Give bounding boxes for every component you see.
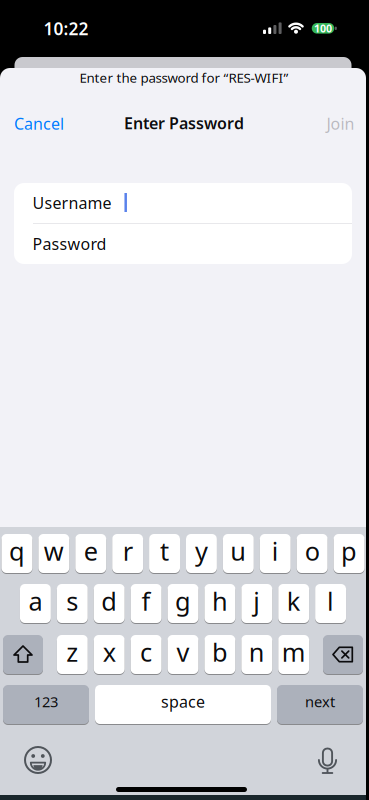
button[interactable]: u bbox=[223, 533, 254, 573]
staticText: c bbox=[140, 635, 152, 669]
staticText: Username bbox=[32, 192, 111, 213]
button[interactable]: q bbox=[1, 533, 32, 573]
button[interactable]: x bbox=[94, 634, 125, 674]
staticText: t bbox=[160, 534, 169, 568]
staticText: g bbox=[175, 584, 191, 618]
staticText: next bbox=[305, 692, 335, 711]
staticText: 10:22 bbox=[43, 17, 88, 40]
staticText: n bbox=[249, 635, 265, 669]
staticText: x bbox=[103, 635, 116, 669]
button[interactable]: Emoji bbox=[22, 744, 53, 775]
button[interactable]: g bbox=[167, 583, 198, 623]
button[interactable]: space bbox=[95, 684, 271, 724]
button[interactable]: m bbox=[278, 634, 309, 674]
button[interactable]: Username bbox=[14, 183, 352, 223]
button[interactable]: l bbox=[315, 583, 346, 623]
staticText: o bbox=[305, 534, 320, 568]
staticText: y bbox=[195, 534, 208, 568]
staticText: z bbox=[66, 635, 78, 669]
staticText: s bbox=[66, 584, 78, 618]
button[interactable]: Shift bbox=[3, 634, 43, 674]
staticText: v bbox=[176, 635, 189, 669]
staticText: Join bbox=[326, 113, 354, 134]
button[interactable]: z bbox=[57, 634, 88, 674]
staticText: j bbox=[253, 584, 260, 618]
staticText: i bbox=[272, 534, 279, 568]
button[interactable]: k bbox=[278, 583, 309, 623]
button[interactable]: h bbox=[204, 583, 235, 623]
staticText: f bbox=[142, 584, 151, 618]
button[interactable]: 123 bbox=[3, 684, 89, 724]
staticText: Cancel bbox=[14, 113, 64, 134]
button[interactable]: Dictate bbox=[312, 743, 343, 776]
staticText: h bbox=[212, 584, 228, 618]
button[interactable]: i bbox=[260, 533, 291, 573]
button[interactable]: j bbox=[241, 583, 272, 623]
button[interactable]: Delete bbox=[323, 634, 363, 674]
staticText: u bbox=[230, 534, 246, 568]
staticText: m bbox=[282, 635, 306, 669]
staticText: l bbox=[327, 584, 334, 618]
button[interactable]: e bbox=[75, 533, 106, 573]
staticText: b bbox=[212, 635, 228, 669]
button[interactable]: t bbox=[149, 533, 180, 573]
staticText: Password bbox=[32, 233, 106, 254]
button[interactable]: b bbox=[204, 634, 235, 674]
button[interactable]: n bbox=[241, 634, 272, 674]
button[interactable]: s bbox=[57, 583, 88, 623]
button[interactable]: next bbox=[277, 684, 363, 724]
staticText: 100 bbox=[314, 21, 332, 35]
button[interactable]: y bbox=[186, 533, 217, 573]
button[interactable]: v bbox=[167, 634, 198, 674]
staticText: Enter the password for “RES-WIFI” bbox=[79, 69, 288, 86]
button[interactable]: a bbox=[20, 583, 51, 623]
button[interactable]: p bbox=[334, 533, 364, 573]
staticText: r bbox=[123, 534, 133, 568]
staticText: e bbox=[84, 534, 98, 568]
button[interactable]: Cancel bbox=[14, 113, 64, 134]
button[interactable]: d bbox=[94, 583, 125, 623]
staticText: q bbox=[9, 534, 25, 568]
button[interactable]: r bbox=[112, 533, 143, 573]
button[interactable]: Password bbox=[14, 224, 352, 264]
button[interactable]: c bbox=[131, 634, 161, 674]
staticText: a bbox=[28, 584, 42, 618]
staticText: d bbox=[101, 584, 117, 618]
button[interactable]: o bbox=[297, 533, 328, 573]
staticText: w bbox=[44, 534, 64, 568]
button[interactable]: f bbox=[131, 583, 161, 623]
staticText: p bbox=[341, 534, 357, 568]
staticText: 123 bbox=[34, 692, 58, 711]
staticText: space bbox=[161, 691, 205, 712]
staticText: Enter Password bbox=[124, 112, 244, 134]
button[interactable]: Join bbox=[326, 113, 354, 134]
staticText: k bbox=[287, 584, 301, 618]
button[interactable]: w bbox=[38, 533, 69, 573]
